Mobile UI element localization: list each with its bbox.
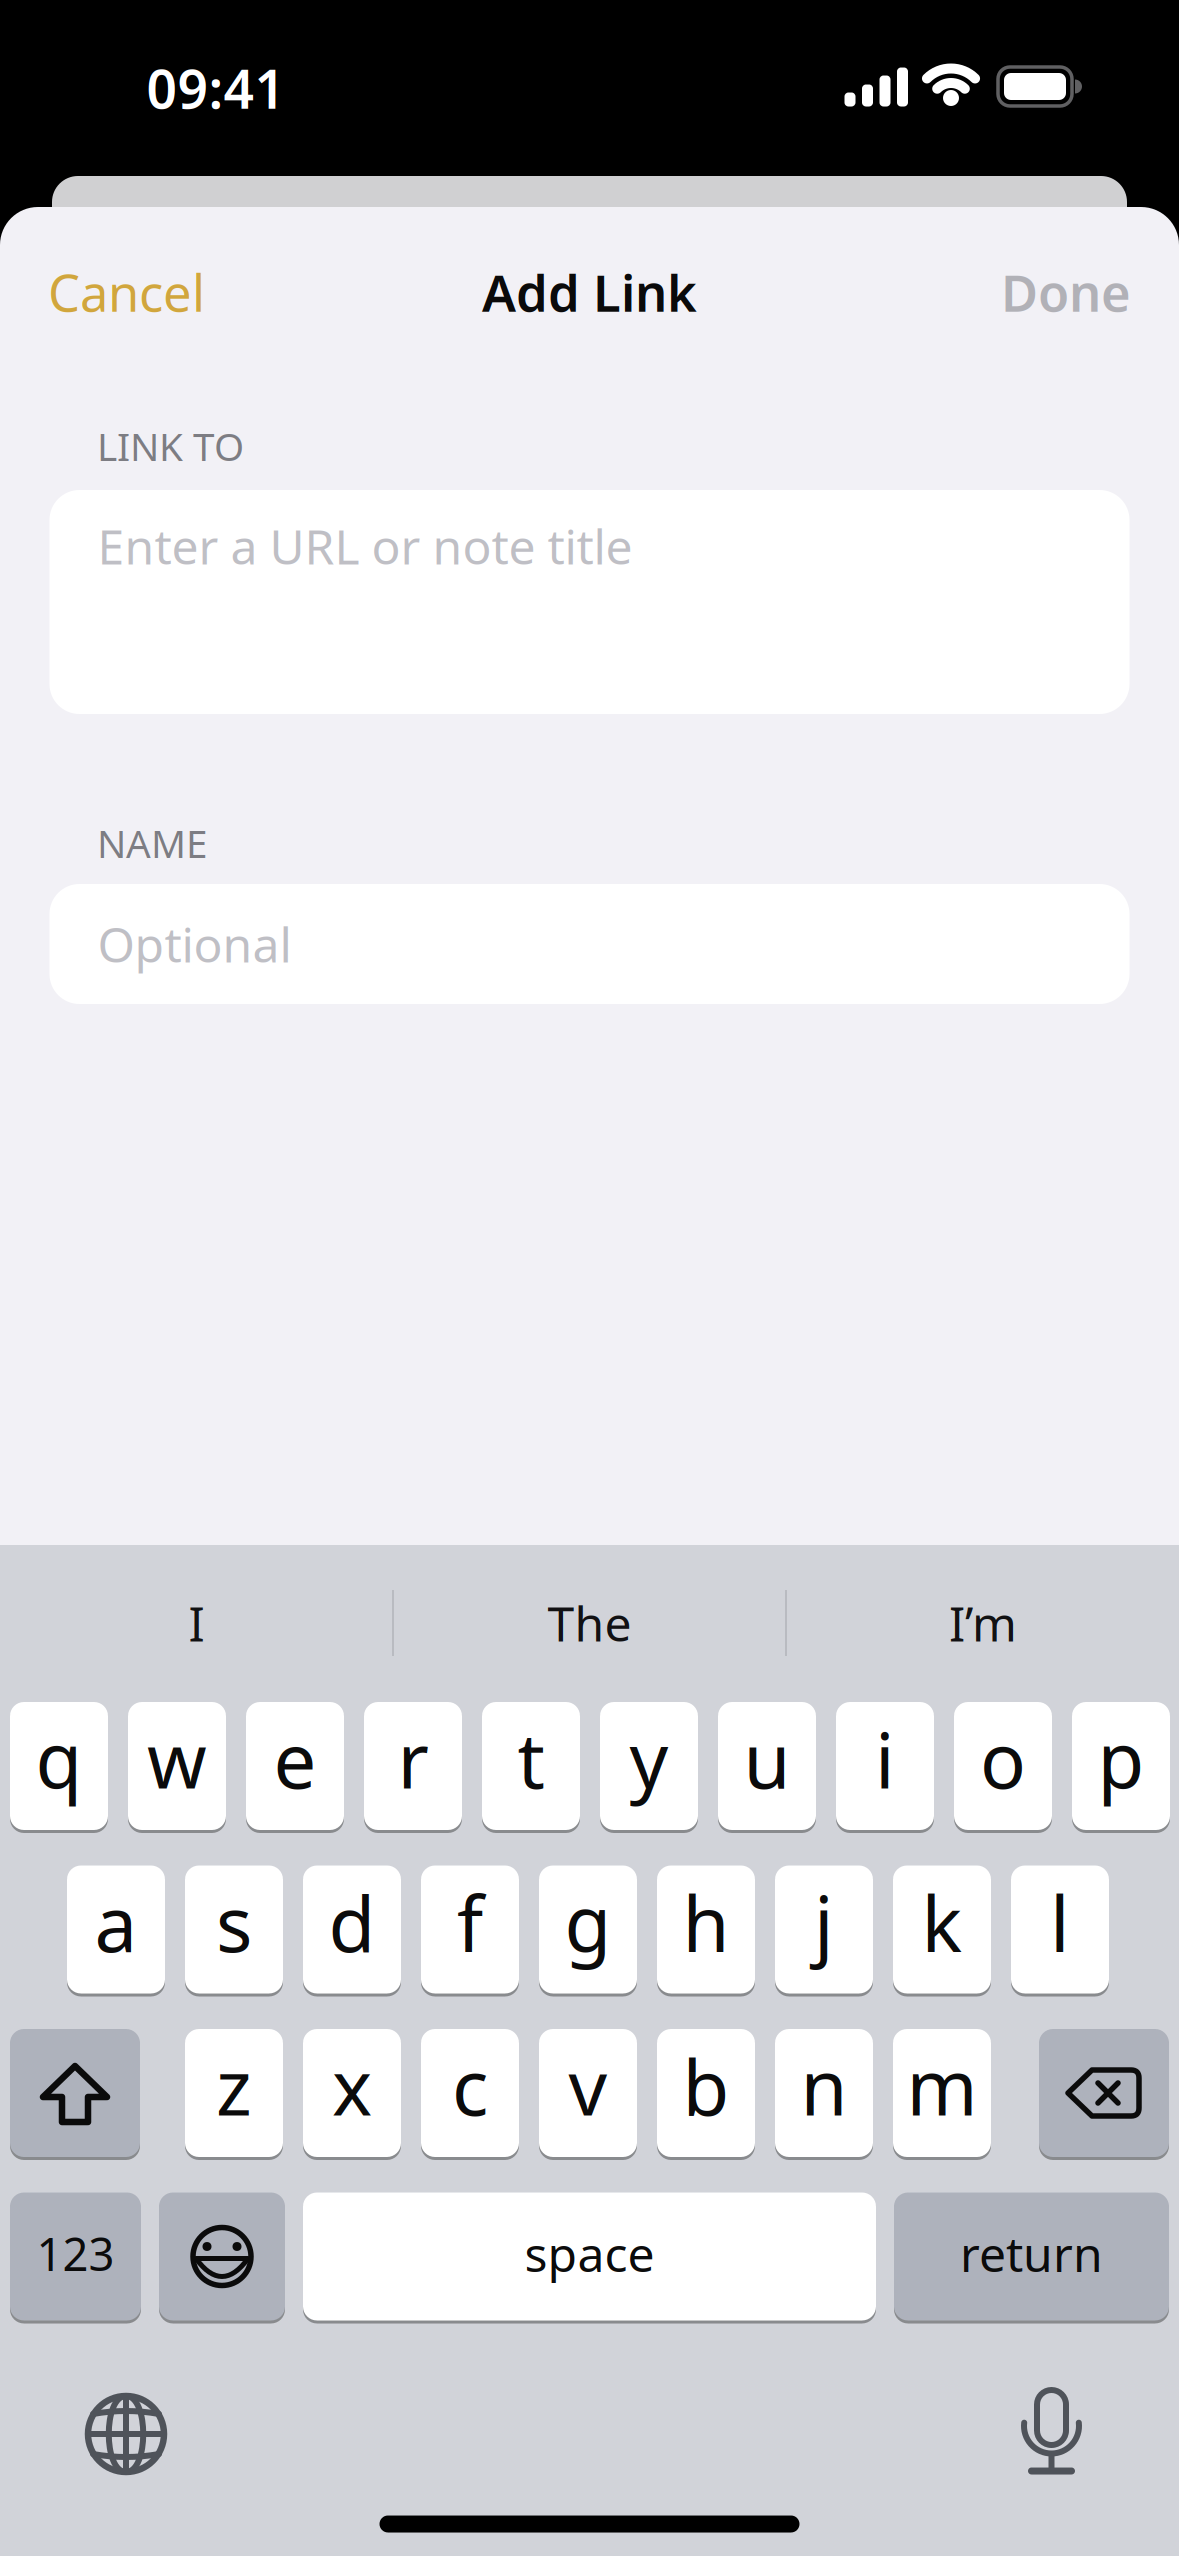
- button[interactable]: t: [482, 1702, 580, 1830]
- staticText: p: [1097, 1708, 1144, 1809]
- staticText: l: [1050, 1872, 1070, 1973]
- button[interactable]: h: [657, 1865, 755, 1993]
- button[interactable]: a: [67, 1865, 165, 1993]
- staticText: 09:41: [146, 53, 285, 123]
- button[interactable]: The: [399, 1573, 779, 1673]
- staticText: LINK TO: [97, 420, 244, 472]
- staticText: a: [94, 1872, 137, 1973]
- button[interactable]: I: [6, 1573, 386, 1673]
- staticText: t: [517, 1708, 544, 1809]
- staticText: u: [743, 1708, 790, 1809]
- staticText: s: [216, 1872, 252, 1973]
- button[interactable]: space: [303, 2192, 876, 2320]
- staticText: r: [397, 1708, 428, 1809]
- button[interactable]: m: [893, 2029, 991, 2157]
- staticText: d: [328, 1872, 375, 1973]
- staticText: g: [564, 1872, 611, 1973]
- button[interactable]: x: [303, 2029, 401, 2157]
- staticText: b: [682, 2035, 729, 2136]
- button[interactable]: Done: [1001, 258, 1131, 326]
- staticText: 123: [36, 2223, 114, 2284]
- button[interactable]: l: [1011, 1865, 1109, 1993]
- button[interactable]: j: [775, 1865, 873, 1993]
- staticText: Cancel: [48, 258, 205, 326]
- button[interactable]: y: [600, 1702, 698, 1830]
- button[interactable]: n: [775, 2029, 873, 2157]
- button[interactable]: c: [421, 2029, 519, 2157]
- staticText: NAME: [97, 817, 207, 869]
- button[interactable]: Enter a URL or note title: [49, 490, 1129, 714]
- staticText: k: [921, 1872, 962, 1973]
- staticText: w: [147, 1708, 207, 1809]
- staticText: Done: [1001, 258, 1131, 326]
- button[interactable]: f: [421, 1865, 519, 1993]
- button[interactable]: Cancel: [48, 258, 205, 326]
- button[interactable]: return: [894, 2192, 1169, 2320]
- button[interactable]: s: [185, 1865, 283, 1993]
- button[interactable]: [66, 2374, 186, 2494]
- staticText: space: [524, 2222, 654, 2285]
- button[interactable]: g: [539, 1865, 637, 1993]
- staticText: f: [457, 1872, 483, 1973]
- staticText: v: [568, 2035, 607, 2136]
- staticText: e: [273, 1708, 316, 1809]
- staticText: i: [875, 1708, 895, 1809]
- staticText: I: [188, 1591, 204, 1655]
- staticText: j: [814, 1872, 834, 1973]
- button[interactable]: i: [836, 1702, 934, 1830]
- staticText: z: [216, 2035, 252, 2136]
- button[interactable]: [1039, 2029, 1169, 2157]
- button[interactable]: b: [657, 2029, 755, 2157]
- button[interactable]: r: [364, 1702, 462, 1830]
- button[interactable]: o: [954, 1702, 1052, 1830]
- staticText: Optional: [97, 912, 291, 976]
- staticText: return: [960, 2222, 1103, 2285]
- button[interactable]: w: [128, 1702, 226, 1830]
- staticText: c: [452, 2035, 488, 2136]
- button[interactable]: v: [539, 2029, 637, 2157]
- button[interactable]: d: [303, 1865, 401, 1993]
- button[interactable]: 123: [10, 2192, 141, 2320]
- staticText: Enter a URL or note title: [97, 514, 632, 578]
- staticText: The: [547, 1591, 631, 1655]
- button[interactable]: e: [246, 1702, 344, 1830]
- button[interactable]: [10, 2029, 140, 2157]
- button[interactable]: k: [893, 1865, 991, 1993]
- staticText: n: [800, 2035, 847, 2136]
- button[interactable]: p: [1072, 1702, 1170, 1830]
- button[interactable]: Optional: [49, 884, 1129, 1004]
- button[interactable]: q: [10, 1702, 108, 1830]
- staticText: o: [980, 1708, 1026, 1809]
- staticText: q: [35, 1708, 82, 1809]
- staticText: I’m: [949, 1591, 1017, 1655]
- staticText: x: [332, 2035, 372, 2136]
- staticText: y: [629, 1708, 668, 1809]
- staticText: h: [682, 1872, 729, 1973]
- staticText: Add Link: [482, 258, 697, 326]
- button[interactable]: [159, 2192, 285, 2320]
- button[interactable]: I’m: [793, 1573, 1173, 1673]
- staticText: m: [906, 2035, 977, 2136]
- button[interactable]: z: [185, 2029, 283, 2157]
- button[interactable]: u: [718, 1702, 816, 1830]
- button[interactable]: [991, 2373, 1111, 2493]
